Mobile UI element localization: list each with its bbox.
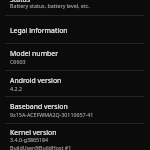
- button[interactable]: Android version: [0, 71, 150, 96]
- staticText: 4.2.2: [10, 85, 22, 92]
- staticText: BuildUser@BuildHost #1: [10, 144, 72, 150]
- button[interactable]: Model number: [0, 44, 150, 70]
- staticText: Legal information: [10, 26, 68, 35]
- staticText: Model number: [10, 49, 59, 58]
- button[interactable]: Status: [0, 0, 150, 15]
- staticText: Baseband version: [10, 102, 68, 111]
- staticText: Android version: [10, 76, 62, 85]
- staticText: Kernel version: [10, 128, 57, 137]
- staticText: Status: [10, 0, 31, 4]
- staticText: Battery status, battery level, etc.: [10, 2, 90, 9]
- button[interactable]: Legal information: [0, 16, 150, 43]
- staticText: 9x15A-ACEFWMA2Q-30110057-41: [10, 111, 94, 118]
- staticText: C6603: [10, 58, 26, 65]
- button[interactable]: Baseband version: [0, 97, 150, 123]
- staticText: 3.4.0-g3865184: [10, 136, 49, 143]
- button[interactable]: Kernel version: [0, 124, 150, 150]
